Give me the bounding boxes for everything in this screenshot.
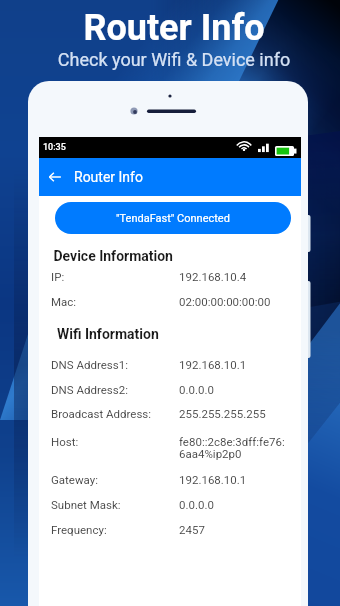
staticText: 10:35 (43, 142, 66, 153)
button[interactable]: Back (39, 158, 301, 196)
button[interactable]: Mac: (51, 295, 295, 308)
staticText: Check your Wifi & Device info (4, 49, 340, 70)
button[interactable]: Gateway: (51, 473, 295, 486)
staticText: fe80::2c8e:3dff:fe76: 6aa4%ip2p0 (179, 435, 285, 461)
staticText: 192.168.10.4 (179, 270, 247, 283)
staticText: Router Info (4, 7, 340, 49)
staticText: Device Information (50, 248, 173, 264)
button[interactable]: DNS Address2: (51, 383, 295, 396)
staticText: Gateway: (51, 473, 179, 486)
staticText: 192.168.10.1 (179, 473, 247, 486)
staticText: Frequency: (51, 523, 179, 536)
staticText: IP: (51, 270, 179, 283)
staticText: 192.168.10.1 (179, 358, 247, 371)
staticText: DNS Address1: (51, 358, 179, 371)
button[interactable]: Subnet Mask: (51, 498, 295, 511)
button[interactable]: "TendaFast" Connected (55, 202, 291, 234)
staticText: Host: (51, 435, 179, 448)
button[interactable]: Host: (51, 435, 295, 461)
staticText: 255.255.255.255 (179, 407, 266, 420)
staticText: Mac: (51, 295, 179, 308)
button[interactable]: Frequency: (51, 523, 295, 536)
button[interactable]: IP: (51, 270, 295, 283)
staticText: Broadcast Address: (51, 407, 179, 420)
staticText: 0.0.0.0 (179, 383, 214, 396)
staticText: "TendaFast" Connected (116, 212, 230, 225)
staticText: Subnet Mask: (51, 498, 179, 511)
staticText: Router Info (74, 169, 143, 185)
staticText: 2457 (179, 523, 205, 536)
button[interactable]: Back (39, 158, 71, 196)
staticText: DNS Address2: (51, 383, 179, 396)
button[interactable]: Broadcast Address: (51, 407, 295, 420)
staticText: 0.0.0.0 (179, 498, 214, 511)
button[interactable]: DNS Address1: (51, 358, 295, 371)
staticText: Wifi Information (50, 326, 159, 342)
staticText: 02:00:00:00:00:00 (179, 295, 271, 308)
